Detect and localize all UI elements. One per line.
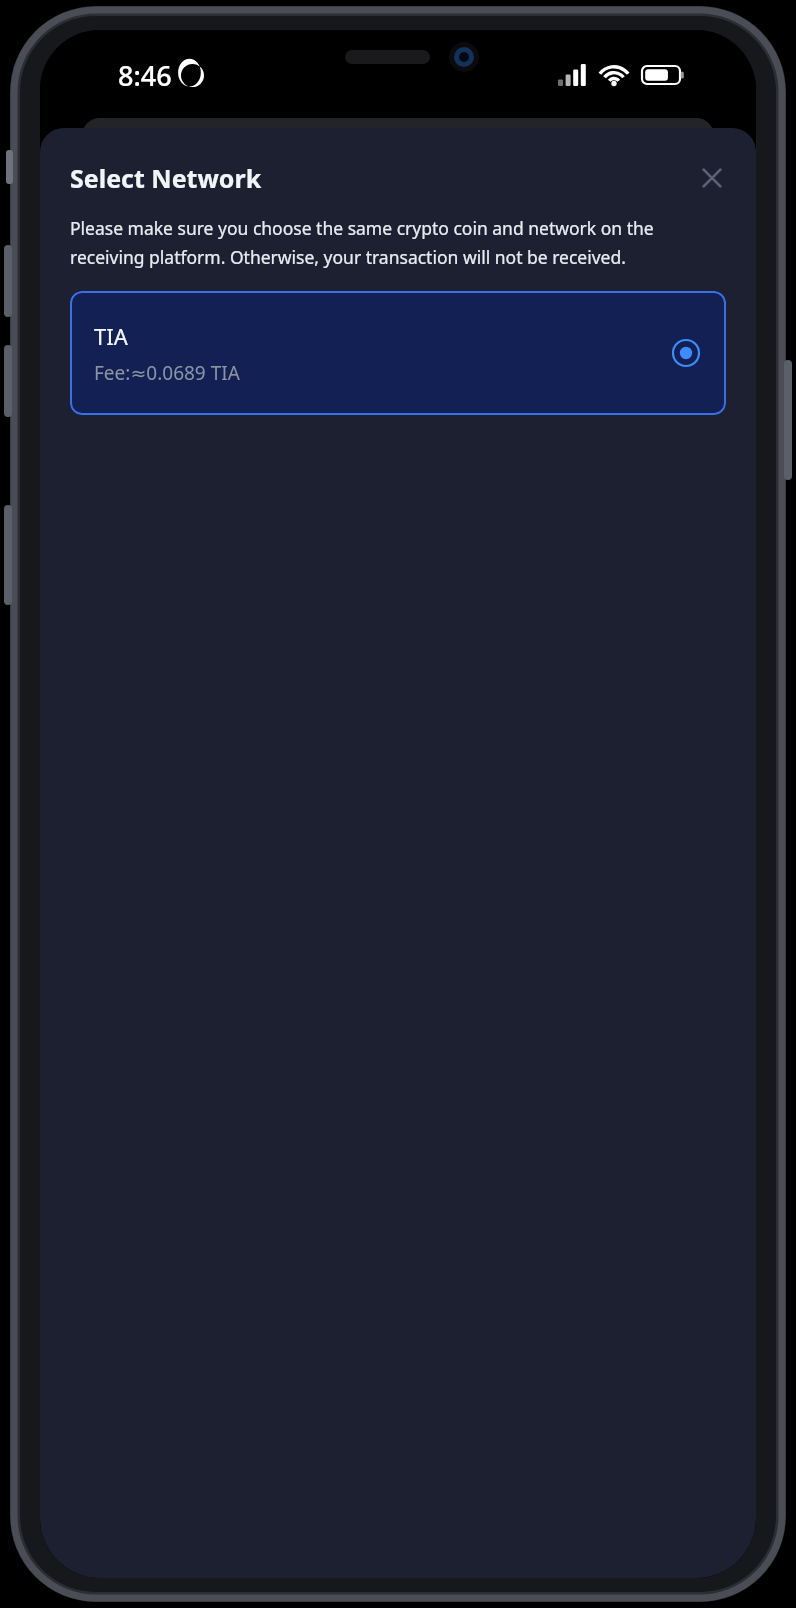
staticText: Select Network <box>70 161 262 195</box>
button[interactable]: TIA <box>70 291 726 415</box>
staticText: Please make sure you choose the same cry… <box>70 216 732 269</box>
staticText: TIA <box>94 321 128 351</box>
button[interactable]: Select TIA network <box>668 335 704 371</box>
staticText: Fee:≈0.0689 TIA <box>94 360 240 386</box>
button[interactable]: Close <box>690 156 734 200</box>
staticText: 8:46 <box>118 57 172 94</box>
